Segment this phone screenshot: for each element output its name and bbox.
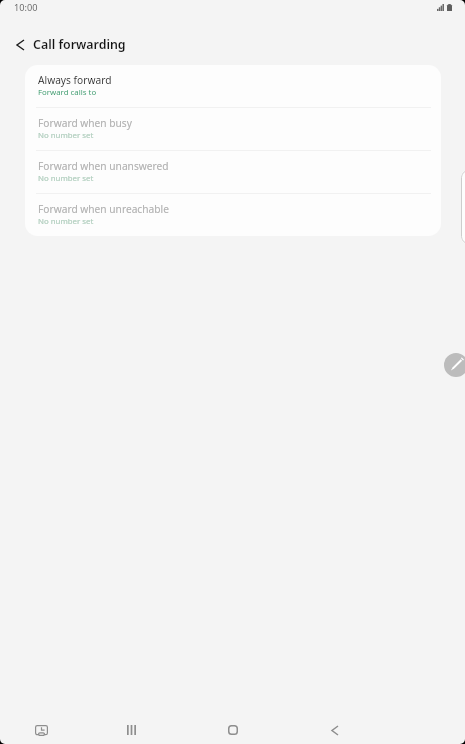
staticText: No number set <box>38 216 94 227</box>
button[interactable]: Home <box>213 717 253 743</box>
button[interactable]: Edge panel handle <box>461 170 465 244</box>
button[interactable]: Back <box>315 717 355 743</box>
button[interactable]: Forward when unreachable <box>25 194 441 236</box>
button[interactable]: Recent apps <box>111 717 151 743</box>
button[interactable]: Hide keyboard <box>21 717 61 743</box>
staticText: No number set <box>38 173 94 184</box>
button[interactable]: Forward when busy <box>25 108 441 150</box>
button[interactable]: Navigate up <box>0 25 40 64</box>
staticText: No number set <box>38 130 94 141</box>
staticText: Call forwarding <box>33 36 126 53</box>
staticText: Forward when busy <box>38 116 132 130</box>
staticText: Always forward <box>38 73 112 87</box>
button[interactable]: Always forward <box>25 65 441 107</box>
button[interactable]: Edit <box>444 353 465 377</box>
staticText: Forward when unanswered <box>38 159 169 173</box>
staticText: Forward when unreachable <box>38 202 169 216</box>
staticText: 10:00 <box>14 1 38 14</box>
button[interactable]: Forward when unanswered <box>25 151 441 193</box>
staticText: Forward calls to <box>38 87 97 98</box>
